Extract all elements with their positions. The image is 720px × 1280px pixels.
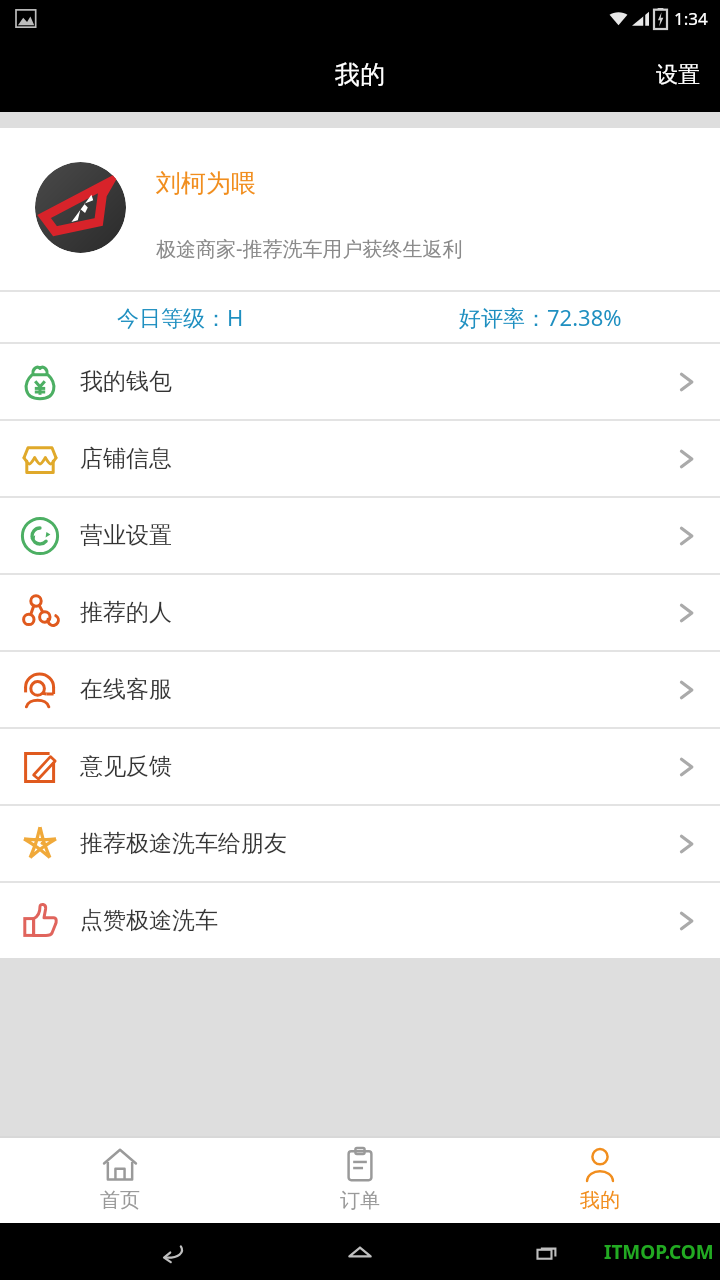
staticText: 极途商家-推荐洗车用户获终生返利	[156, 235, 463, 262]
staticText: 在线客服	[80, 675, 172, 704]
button[interactable]: 设置	[636, 47, 720, 103]
button[interactable]: 推荐极途洗车给朋友	[0, 806, 720, 881]
button[interactable]: 点赞极途洗车	[0, 883, 720, 958]
staticText: 1:34	[674, 7, 708, 30]
staticText: 意见反馈	[80, 752, 172, 781]
staticText: 我的钱包	[80, 367, 172, 396]
other: Recents	[533, 1238, 561, 1266]
button[interactable]: 订单	[240, 1138, 480, 1223]
staticText: 点赞极途洗车	[80, 906, 218, 935]
button[interactable]: 我的钱包	[0, 344, 720, 419]
button[interactable]: 好评率：72.38%	[360, 292, 720, 342]
button[interactable]: 在线客服	[0, 652, 720, 727]
staticText: 首页	[100, 1188, 140, 1213]
button[interactable]: 首页	[0, 1138, 240, 1223]
staticText: 今日等级：H	[117, 302, 244, 332]
button[interactable]: 我的	[480, 1138, 720, 1223]
other: Home	[346, 1238, 374, 1266]
staticText: 推荐极途洗车给朋友	[80, 829, 287, 858]
staticText: 好评率：72.38%	[459, 302, 622, 332]
staticText: 店铺信息	[80, 444, 172, 473]
staticText: 推荐的人	[80, 598, 172, 627]
staticText: 营业设置	[80, 521, 172, 550]
staticText: 我的	[580, 1188, 620, 1213]
button[interactable]: 刘柯为喂	[0, 128, 720, 290]
button[interactable]: 店铺信息	[0, 421, 720, 496]
other: Back	[159, 1238, 187, 1266]
button[interactable]: 营业设置	[0, 498, 720, 573]
staticText: ITMOP.COM	[604, 1239, 714, 1265]
button[interactable]: 推荐的人	[0, 575, 720, 650]
button[interactable]: 今日等级：H	[0, 292, 360, 342]
staticText: 设置	[656, 61, 700, 89]
staticText: 订单	[340, 1188, 380, 1213]
staticText: 我的	[335, 59, 385, 90]
staticText: 刘柯为喂	[156, 168, 256, 199]
button[interactable]: 意见反馈	[0, 729, 720, 804]
